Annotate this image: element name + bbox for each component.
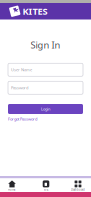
button[interactable]: Dashboard bbox=[65, 179, 91, 192]
staticText: Dashboard bbox=[71, 188, 85, 191]
staticText: Forgot Password bbox=[8, 116, 37, 122]
staticText: KITES bbox=[22, 5, 47, 17]
staticText: User Name bbox=[11, 67, 32, 72]
staticText: Home bbox=[8, 188, 16, 191]
staticText: Password bbox=[11, 85, 28, 90]
button[interactable]: Test bbox=[34, 179, 58, 192]
staticText: Sign In bbox=[30, 39, 60, 51]
button[interactable]: Forgot Password bbox=[8, 116, 53, 122]
staticText: Login bbox=[41, 106, 50, 112]
staticText: Test bbox=[43, 188, 48, 191]
button[interactable]: Home bbox=[0, 179, 24, 192]
button[interactable]: Login bbox=[8, 104, 83, 114]
